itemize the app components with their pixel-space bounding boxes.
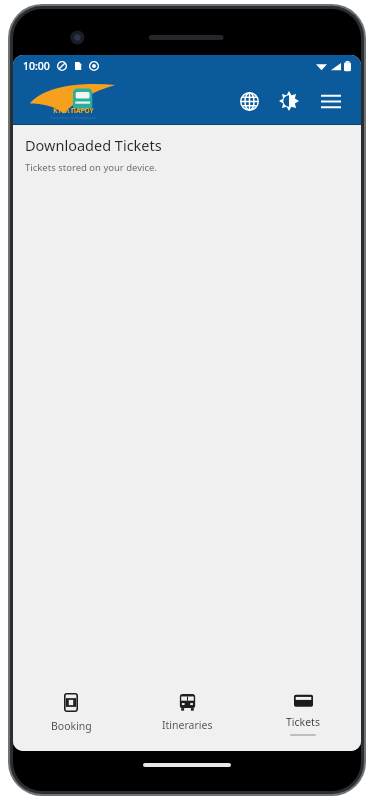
- staticText: 10:00: [23, 59, 50, 73]
- button[interactable]: Booking: [13, 683, 129, 751]
- button[interactable]: Tickets: [245, 683, 361, 751]
- staticText: Downloaded Tickets: [25, 135, 162, 155]
- staticText: Booking: [51, 719, 92, 733]
- staticText: Itineraries: [162, 718, 213, 732]
- button[interactable]: Change language: [229, 81, 269, 121]
- staticText: Tickets: [286, 715, 320, 729]
- staticText: Τουριστικές & Μεταφορικές: [50, 115, 97, 120]
- staticText: Tickets stored on your device.: [25, 161, 158, 174]
- staticText: ΚΤΕΛ ΠΑΡΟΥ: [53, 106, 94, 115]
- button[interactable]: ΚΤΕΛ ΠΑΡΟΥ: [27, 80, 119, 122]
- button[interactable]: Itineraries: [129, 683, 245, 751]
- button[interactable]: Open menu: [309, 79, 353, 123]
- button[interactable]: Toggle dark mode: [269, 81, 309, 121]
